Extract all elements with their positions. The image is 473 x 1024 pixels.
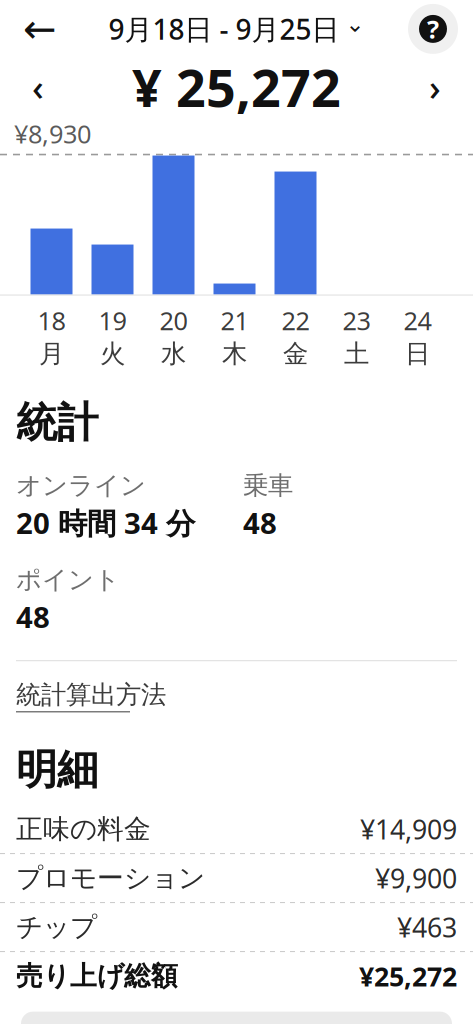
staticText: ¥25,272 [359, 958, 457, 994]
staticText: 日 [405, 338, 430, 369]
staticText: チップ [16, 911, 97, 943]
staticText: プロモーション [16, 862, 205, 894]
staticText: 売り上げ総額 [16, 960, 178, 992]
button[interactable]: 前の週 [14, 63, 62, 111]
staticText: 20 時間 34 分 [16, 503, 195, 542]
staticText: 乗車 [243, 470, 293, 501]
staticText: › [429, 63, 441, 111]
staticText: 火 [100, 338, 125, 369]
staticText: 22 [281, 303, 309, 337]
staticText: 20 [159, 303, 187, 337]
staticText: 正味の料金 [16, 813, 151, 845]
staticText: 48 [16, 597, 50, 636]
staticText: 24 [403, 303, 431, 337]
staticText: ? [427, 12, 439, 46]
staticText: ¥8,930 [14, 117, 91, 150]
staticText: 18 [37, 303, 65, 337]
staticText: ⌄ [345, 11, 364, 37]
staticText: 月 [39, 338, 64, 369]
staticText: ← [23, 6, 57, 52]
staticText: 木 [222, 338, 247, 369]
staticText: ‹ [32, 63, 44, 111]
staticText: 23 [342, 303, 370, 337]
staticText: 9月18日 - 9月25日 [108, 10, 339, 47]
staticText: 水 [161, 338, 186, 369]
button[interactable]: 次の週 [411, 63, 459, 111]
staticText: ¥463 [397, 909, 457, 945]
staticText: 21 [220, 303, 248, 337]
staticText: 統計算出方法 [16, 679, 166, 710]
staticText: ¥ 25,272 [132, 52, 341, 121]
staticText: 明細 [16, 744, 98, 795]
staticText: オンライン [16, 470, 146, 501]
button[interactable]: 戻る [14, 3, 66, 55]
staticText: ポイント [16, 564, 120, 595]
button[interactable]: ヘルプ [407, 3, 459, 55]
staticText: 48 [243, 503, 277, 542]
staticText: ¥14,909 [360, 811, 457, 847]
staticText: ¥9,900 [375, 860, 457, 896]
button[interactable]: 統計算出方法 [16, 661, 166, 716]
staticText: 金 [283, 338, 308, 369]
staticText: 統計 [16, 397, 98, 448]
staticText: 土 [344, 338, 369, 369]
staticText: 19 [98, 303, 126, 337]
